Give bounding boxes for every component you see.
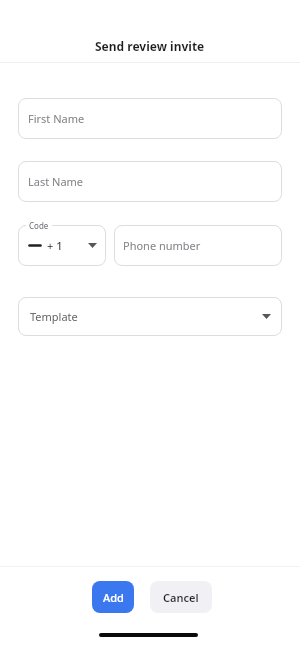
button[interactable]: + 1 xyxy=(18,225,106,266)
staticText: Phone number xyxy=(123,238,201,253)
staticText: First Name xyxy=(28,111,85,126)
staticText: Add xyxy=(103,590,124,605)
staticText: + 1 xyxy=(47,238,63,253)
staticText: Cancel xyxy=(163,590,199,605)
button[interactable]: Add xyxy=(92,581,134,613)
button[interactable]: Last Name xyxy=(18,161,282,202)
staticText: Template xyxy=(30,309,78,324)
button[interactable]: First Name xyxy=(18,98,282,139)
staticText: Last Name xyxy=(28,174,84,189)
staticText: Code xyxy=(29,220,49,231)
staticText: Send review invite xyxy=(95,38,205,54)
button[interactable]: Phone number xyxy=(114,225,282,266)
button[interactable]: Template xyxy=(18,297,282,336)
button[interactable]: Cancel xyxy=(150,581,212,613)
